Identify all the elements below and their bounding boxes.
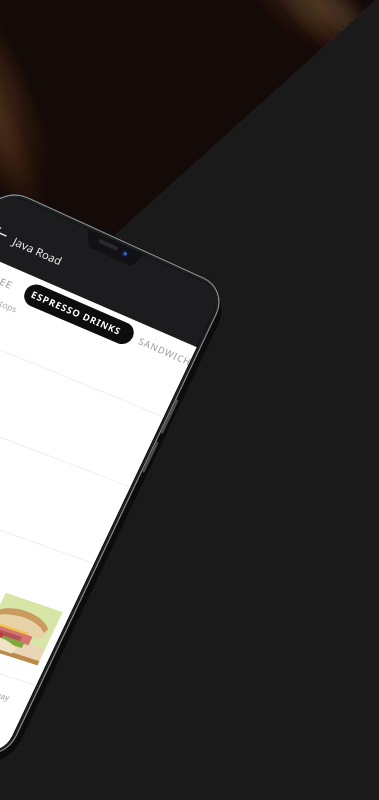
button[interactable] [0,0,379,800]
